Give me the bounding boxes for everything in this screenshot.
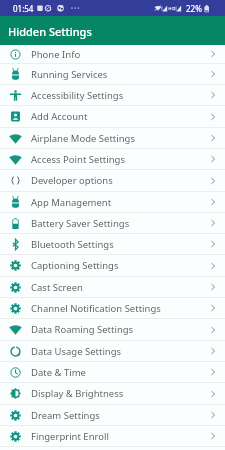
button[interactable]: Dream Settings [0, 405, 225, 426]
staticText: Display & Brightness [31, 387, 124, 400]
button[interactable]: Cast Screen [0, 277, 225, 298]
button[interactable]: Airplane Mode Settings [0, 128, 225, 149]
other: Data Usage Settings [211, 347, 216, 355]
other: Airplane Mode Settings [211, 134, 216, 142]
other: Captioning Settings [211, 262, 216, 270]
other: Accessibility Settings [211, 91, 216, 99]
other: Data Roaming Settings [211, 326, 216, 334]
staticText: Battery Saver Settings [31, 217, 130, 230]
other: Developer options [211, 177, 216, 185]
other: Fingerprint Enroll [211, 432, 216, 440]
staticText: Date & Time [31, 366, 86, 379]
button[interactable]: Running Services [0, 64, 225, 85]
button[interactable]: Add Account [0, 106, 225, 128]
staticText: Data Usage Settings [31, 345, 122, 358]
other: Date & Time [211, 368, 216, 376]
button[interactable]: Channel Notification Settings [0, 298, 225, 319]
button[interactable]: Data Roaming Settings [0, 319, 225, 341]
button[interactable]: Access Point Settings [0, 149, 225, 170]
button[interactable]: Bluetooth Settings [0, 234, 225, 255]
staticText: Hidden Settings [8, 24, 92, 39]
button[interactable]: App Management [0, 192, 225, 213]
other: Running Services [211, 70, 216, 78]
staticText: Developer options [31, 174, 113, 187]
other: Phone Info [211, 50, 216, 58]
staticText: Bluetooth Settings [31, 238, 114, 251]
staticText: Airplane Mode Settings [31, 132, 135, 145]
button[interactable]: Date & Time [0, 362, 225, 383]
other: Bluetooth Settings [211, 240, 216, 248]
other: Battery Saver Settings [211, 219, 216, 227]
button[interactable]: Developer options [0, 170, 225, 192]
other: App Management [211, 198, 216, 206]
staticText: Captioning Settings [31, 259, 119, 272]
other: Add Account [211, 113, 216, 121]
staticText: Dream Settings [31, 409, 100, 422]
button[interactable]: Phone Info [0, 45, 225, 64]
other: Cast Screen [211, 283, 216, 291]
staticText: Add Account [31, 110, 88, 123]
staticText: Channel Notification Settings [31, 302, 161, 315]
staticText: Phone Info [31, 48, 81, 61]
staticText: App Management [31, 196, 112, 209]
staticText: Running Services [31, 68, 108, 81]
button[interactable]: Accessibility Settings [0, 85, 225, 106]
staticText: Accessibility Settings [31, 89, 124, 102]
staticText: 01:54 [13, 3, 34, 14]
staticText: Fingerprint Enroll [31, 430, 109, 443]
button[interactable]: Data Usage Settings [0, 341, 225, 362]
other: Channel Notification Settings [211, 304, 216, 312]
other: Access Point Settings [211, 155, 216, 163]
other: Display & Brightness [211, 390, 216, 398]
staticText: Data Roaming Settings [31, 323, 134, 336]
button[interactable]: Captioning Settings [0, 255, 225, 277]
button[interactable]: Display & Brightness [0, 383, 225, 405]
button[interactable]: Battery Saver Settings [0, 213, 225, 234]
staticText: Access Point Settings [31, 153, 125, 166]
staticText: Cast Screen [31, 281, 83, 294]
staticText: 22% [186, 3, 202, 14]
button[interactable]: Fingerprint Enroll [0, 426, 225, 447]
other: Dream Settings [211, 411, 216, 419]
